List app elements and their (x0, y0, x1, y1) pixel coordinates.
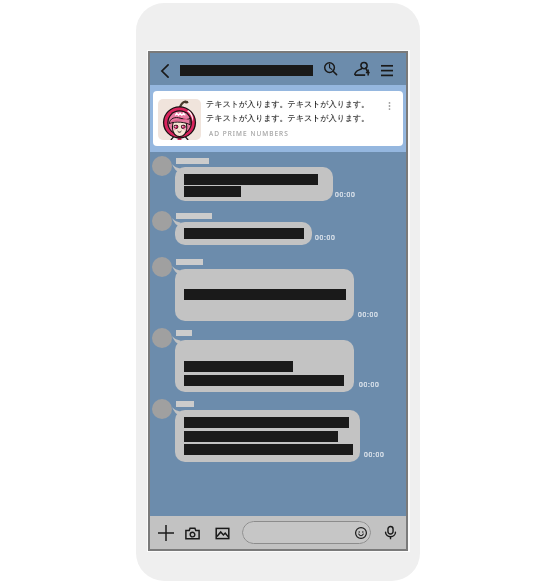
button[interactable] (175, 340, 354, 392)
staticText: AD PRIME NUMBERS (209, 129, 289, 138)
staticText: 00:00 (335, 190, 356, 199)
button[interactable]: Emoji (242, 521, 371, 544)
button[interactable] (175, 222, 312, 245)
button[interactable]: テキストが入ります。テキストが入ります。 (153, 91, 403, 146)
button[interactable]: Profile photo (152, 399, 172, 419)
button[interactable]: Emoji (354, 526, 367, 539)
button[interactable]: Voice message (379, 521, 401, 543)
button[interactable]: Menu (376, 59, 398, 81)
staticText: 00:00 (364, 450, 385, 459)
staticText: 00:00 (359, 380, 380, 389)
button[interactable] (175, 410, 360, 462)
button[interactable]: More options (382, 96, 397, 111)
button[interactable]: Profile photo (152, 257, 172, 277)
button[interactable]: Add friend (351, 58, 373, 80)
button[interactable]: Search (319, 57, 341, 79)
button[interactable]: Photo (211, 522, 233, 544)
staticText: テキストが入ります。テキストが入ります。 (206, 99, 369, 109)
staticText: 00:00 (358, 310, 379, 319)
button[interactable]: Back (157, 60, 172, 81)
button[interactable] (175, 269, 354, 321)
button[interactable] (175, 167, 333, 201)
button[interactable]: Profile photo (152, 156, 172, 176)
button[interactable]: Camera (181, 522, 203, 544)
button[interactable]: Profile photo (152, 211, 172, 231)
button[interactable]: Profile photo (152, 328, 172, 348)
staticText: 00:00 (315, 233, 336, 242)
staticText: テキストが入ります。テキストが入ります。 (206, 113, 369, 123)
button[interactable]: Add (155, 522, 177, 544)
